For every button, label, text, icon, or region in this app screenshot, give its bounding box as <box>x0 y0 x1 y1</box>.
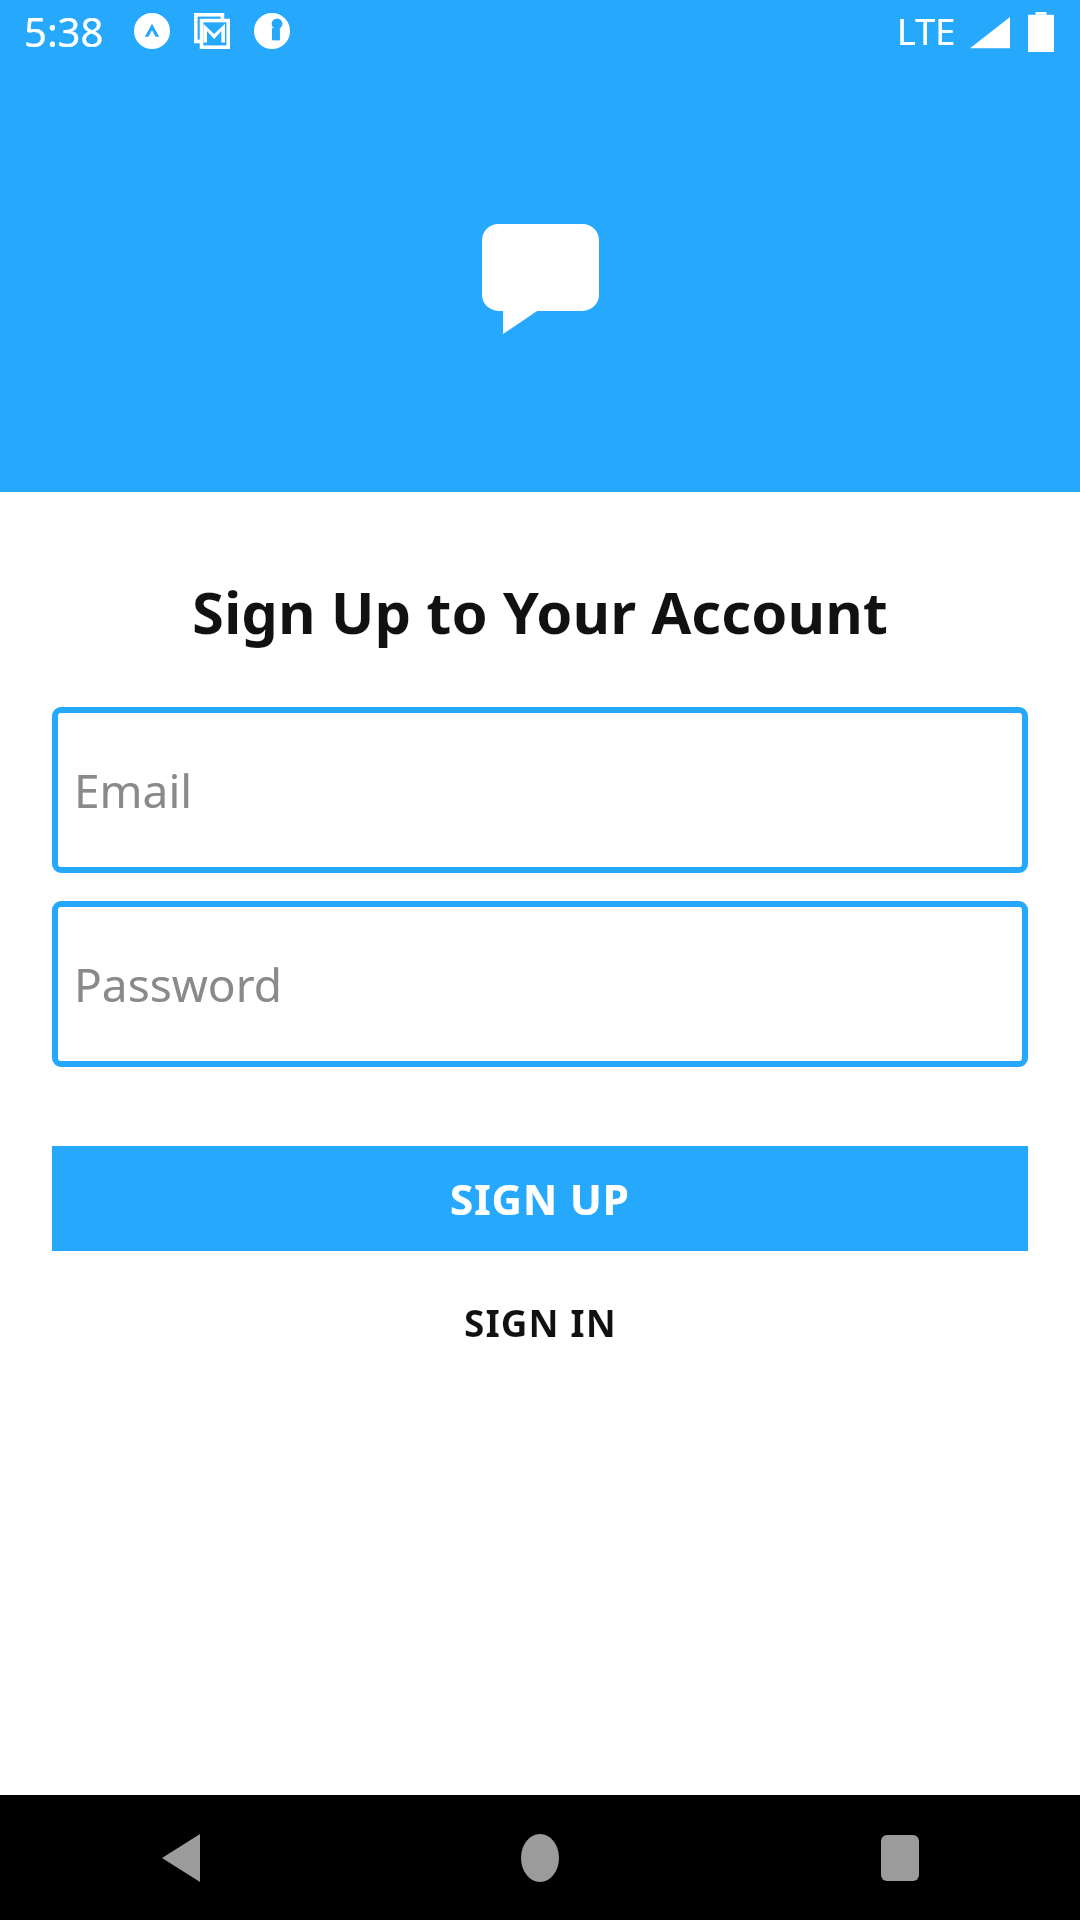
staticText: SIGN IN <box>464 1297 617 1347</box>
staticText: Password <box>74 953 283 1016</box>
button[interactable]: Home <box>360 1795 720 1920</box>
staticText: SIGN UP <box>450 1170 630 1227</box>
button[interactable]: Password <box>52 901 1028 1067</box>
button[interactable]: SIGN IN <box>424 1277 657 1367</box>
button[interactable]: Recent apps <box>720 1795 1080 1920</box>
staticText: Email <box>74 759 193 822</box>
staticText: 5:38 <box>24 4 104 58</box>
staticText: Sign Up to Your Account <box>0 572 1080 651</box>
button[interactable]: SIGN UP <box>52 1146 1028 1251</box>
button[interactable]: Back <box>0 1795 360 1920</box>
staticText: LTE <box>897 7 956 56</box>
button[interactable]: Email <box>52 707 1028 873</box>
